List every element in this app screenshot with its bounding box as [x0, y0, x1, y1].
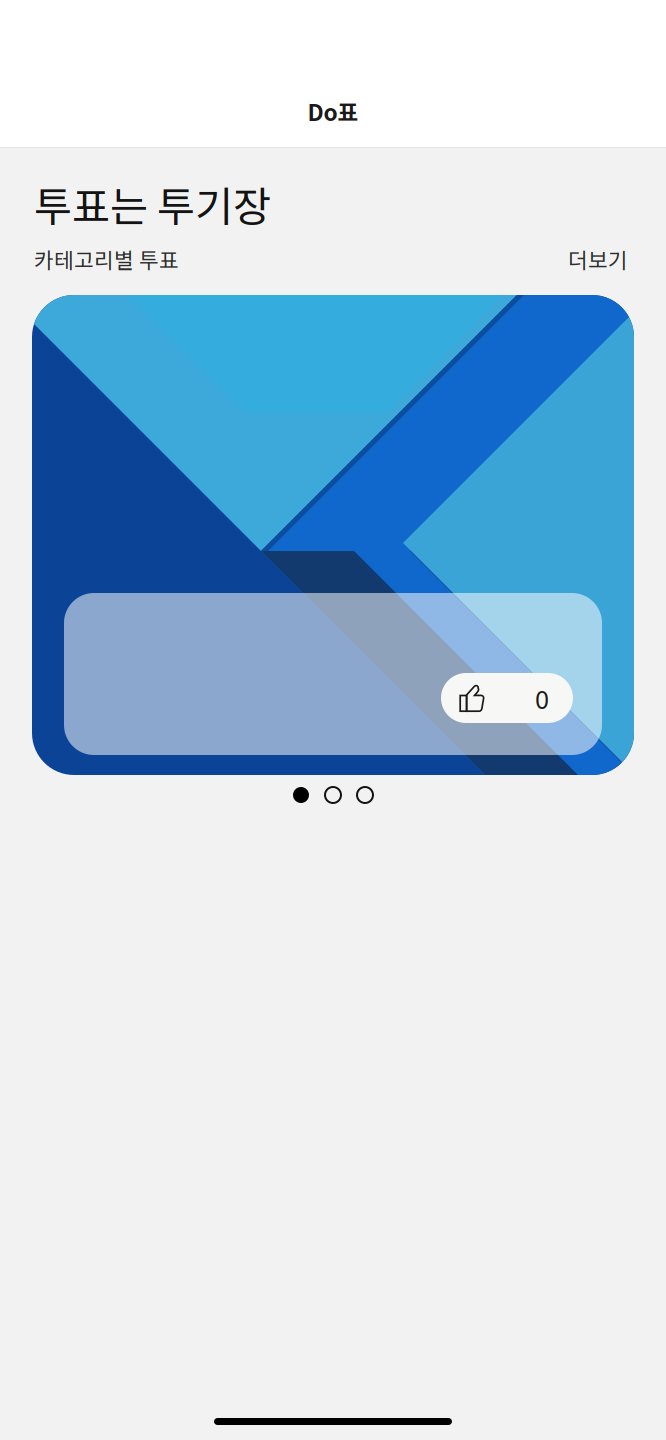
staticText: 더보기: [568, 244, 628, 274]
button[interactable]: 더보기: [568, 244, 628, 274]
staticText: 투표는 투기장: [34, 174, 271, 234]
staticText: Do표: [307, 95, 358, 127]
staticText: 0: [535, 680, 549, 716]
button[interactable]: 0: [32, 295, 634, 775]
staticText: 카테고리별 투표: [34, 244, 179, 274]
